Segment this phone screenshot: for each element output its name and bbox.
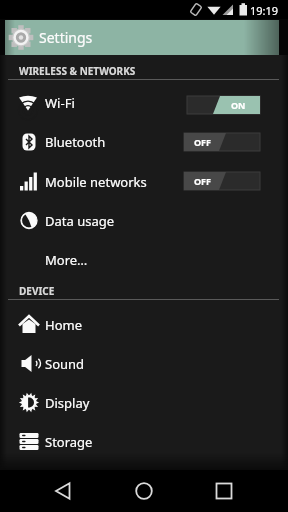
button[interactable] <box>184 172 260 190</box>
button[interactable] <box>30 474 94 508</box>
staticText: ON <box>231 99 246 111</box>
button[interactable] <box>112 474 176 508</box>
button[interactable] <box>6 422 282 461</box>
button[interactable] <box>187 96 260 114</box>
button[interactable] <box>6 383 282 422</box>
button[interactable] <box>6 344 282 383</box>
staticText: Settings <box>39 28 93 47</box>
button[interactable] <box>6 83 282 122</box>
staticText: More… <box>45 251 88 269</box>
button[interactable] <box>5 20 279 55</box>
staticText: Display <box>45 394 90 412</box>
button[interactable] <box>6 305 282 344</box>
staticText: Data usage <box>45 212 115 230</box>
staticText: WIRELESS & NETWORKS <box>19 64 136 78</box>
staticText: Storage <box>45 433 93 451</box>
staticText: Wi-Fi <box>45 94 75 112</box>
staticText: 19:19 <box>250 3 279 18</box>
staticText: DEVICE <box>19 284 55 298</box>
button[interactable] <box>194 474 258 508</box>
staticText: Mobile networks <box>45 173 147 191</box>
button[interactable] <box>184 133 260 151</box>
button[interactable] <box>6 201 282 240</box>
staticText: Bluetooth <box>45 133 106 151</box>
staticText: Home <box>45 316 82 334</box>
staticText: OFF <box>194 175 212 187</box>
button[interactable] <box>40 247 240 272</box>
button[interactable] <box>6 123 282 162</box>
staticText: Sound <box>45 355 85 373</box>
staticText: OFF <box>194 136 212 148</box>
button[interactable] <box>6 162 282 201</box>
